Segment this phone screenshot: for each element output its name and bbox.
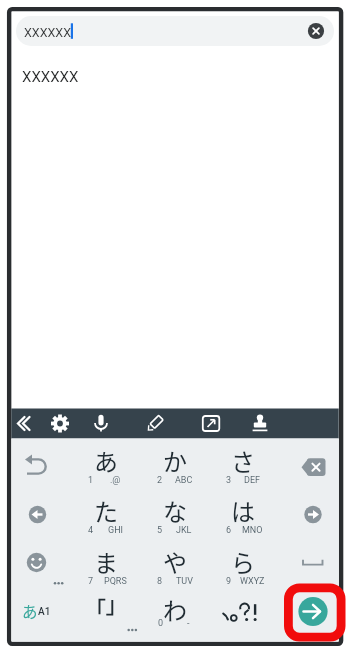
staticText: な bbox=[163, 493, 187, 528]
staticText: A1 bbox=[38, 606, 51, 618]
staticText: た bbox=[94, 493, 118, 528]
staticText: TUV bbox=[176, 576, 193, 587]
staticText: は bbox=[231, 493, 255, 528]
button[interactable] bbox=[305, 20, 327, 42]
button[interactable]: あ bbox=[12, 591, 71, 642]
button[interactable]: ま bbox=[71, 540, 140, 591]
staticText: 1 bbox=[88, 475, 94, 486]
staticText: PQRS bbox=[104, 576, 127, 587]
button[interactable]: さ bbox=[209, 439, 277, 490]
staticText: あ bbox=[22, 600, 38, 622]
button[interactable] bbox=[11, 409, 41, 439]
button[interactable]: か bbox=[140, 439, 209, 490]
staticText: XXXXXX bbox=[24, 25, 72, 40]
staticText: MNO bbox=[242, 525, 263, 536]
button[interactable]: や bbox=[140, 540, 209, 591]
button[interactable]: は bbox=[209, 489, 277, 540]
staticText: XXXXXX bbox=[22, 68, 79, 86]
button[interactable]: な bbox=[140, 489, 209, 540]
staticText: 3 bbox=[226, 475, 232, 486]
staticText: .@ bbox=[110, 475, 121, 486]
staticText: か bbox=[163, 443, 187, 478]
staticText: ま bbox=[94, 544, 118, 579]
button[interactable] bbox=[277, 439, 338, 490]
staticText: 4 bbox=[88, 525, 94, 536]
staticText: ABC bbox=[175, 475, 193, 486]
button[interactable] bbox=[137, 409, 172, 439]
staticText: 6 bbox=[226, 525, 232, 536]
button[interactable] bbox=[277, 540, 338, 591]
button[interactable]: ら bbox=[209, 540, 277, 591]
staticText: 9 bbox=[226, 576, 232, 587]
staticText: あ bbox=[94, 443, 118, 478]
staticText: ら bbox=[231, 544, 255, 579]
staticText: 5 bbox=[157, 525, 163, 536]
button[interactable] bbox=[12, 489, 71, 540]
button[interactable] bbox=[16, 16, 334, 46]
staticText: GHI bbox=[108, 525, 123, 536]
button[interactable]: わ bbox=[140, 591, 209, 642]
staticText: 2 bbox=[157, 475, 163, 486]
staticText: DEF bbox=[244, 475, 260, 486]
button[interactable] bbox=[277, 489, 338, 540]
staticText: や bbox=[163, 544, 187, 579]
button[interactable] bbox=[71, 591, 140, 642]
button[interactable] bbox=[45, 409, 80, 439]
button[interactable] bbox=[12, 540, 71, 591]
staticText: - bbox=[187, 618, 190, 629]
button[interactable] bbox=[84, 409, 119, 439]
button[interactable]: あ bbox=[71, 439, 140, 490]
staticText: WXYZ bbox=[240, 576, 265, 587]
staticText: 8 bbox=[157, 576, 163, 587]
button[interactable]: た bbox=[71, 489, 140, 540]
staticText: さ bbox=[231, 443, 255, 478]
button[interactable] bbox=[209, 591, 277, 642]
staticText: 7 bbox=[88, 576, 94, 587]
staticText: JKL bbox=[176, 525, 192, 536]
staticText: 0 bbox=[158, 618, 164, 629]
button[interactable] bbox=[12, 439, 71, 490]
button[interactable] bbox=[277, 591, 338, 642]
staticText: わ bbox=[163, 592, 187, 627]
button[interactable] bbox=[242, 409, 277, 439]
button[interactable] bbox=[193, 409, 228, 439]
